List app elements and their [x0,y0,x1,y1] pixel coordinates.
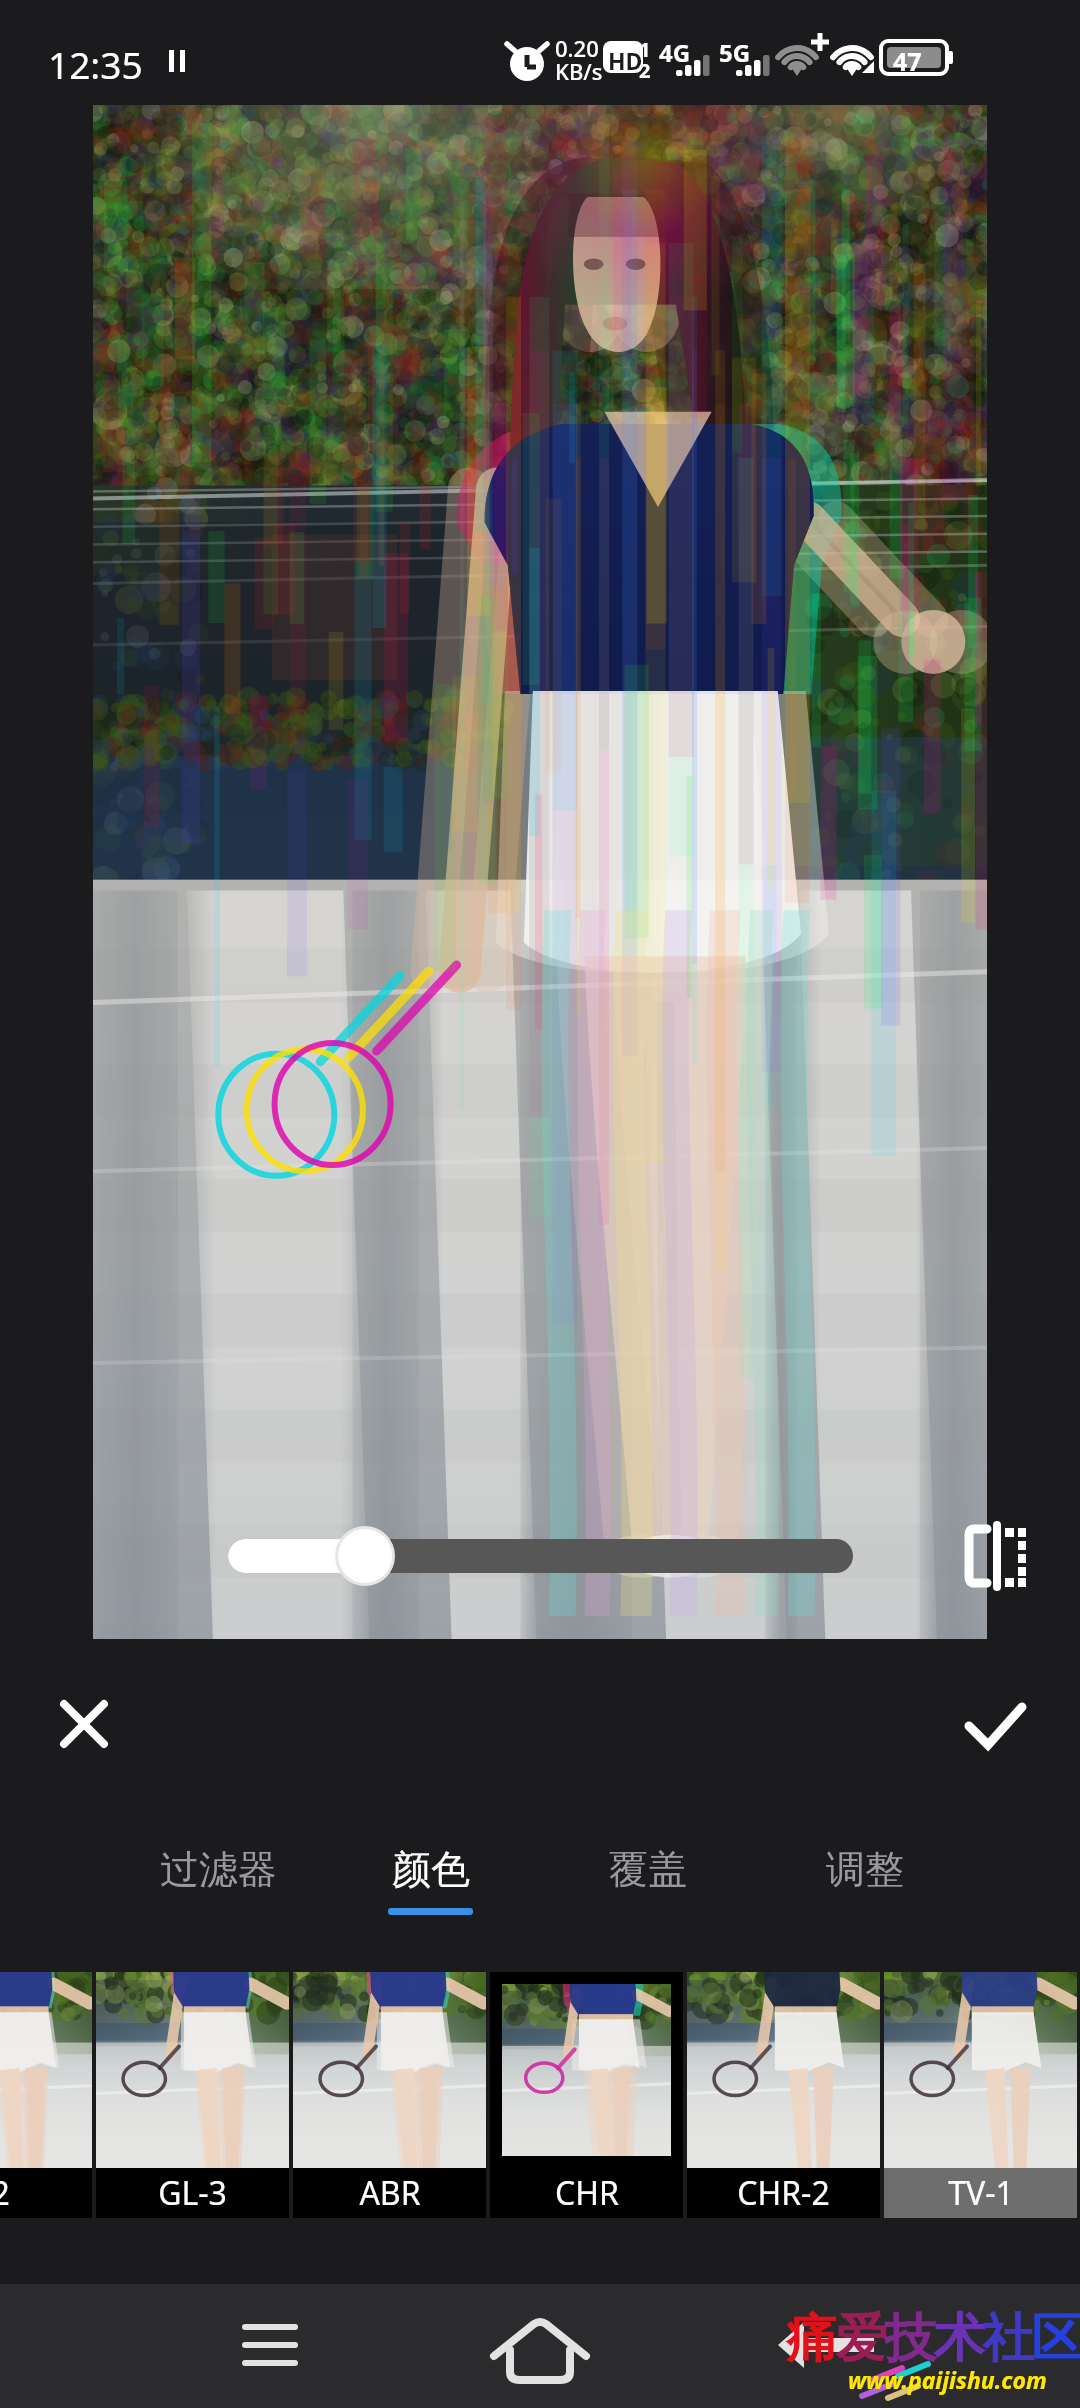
staticText: 过滤器 [160,1845,277,1894]
button[interactable]: CHR-2 [687,1972,880,2218]
button[interactable]: CHR [490,1972,683,2218]
staticText: 2 [639,57,651,84]
staticText: 0.20 [555,33,599,63]
staticText: 技 [884,2306,936,2372]
staticText: www.paijishu.com [848,2364,1047,2395]
staticText: TV-1 [948,2171,1014,2215]
staticText: CHR [555,2171,619,2215]
staticText: 社 [982,2306,1034,2372]
staticText: 调整 [826,1845,904,1894]
button[interactable]: Back [760,2284,900,2408]
button[interactable]: ABR [293,1972,486,2218]
staticText: 术 [933,2306,985,2372]
staticText: CHR-2 [737,2171,830,2215]
button[interactable]: 过滤器 [108,1845,328,1955]
staticText: 痛 [786,2306,838,2372]
staticText: GL-3 [158,2171,227,2215]
staticText: 47 [893,44,922,78]
staticText: HD [608,45,643,76]
staticText: 5G [719,36,751,69]
button[interactable]: 覆盖 [538,1845,758,1955]
button[interactable]: 调整 [755,1845,975,1955]
staticText: 区 [1031,2306,1080,2372]
staticText: 爱 [835,2306,887,2372]
button[interactable]: Menu [200,2284,340,2408]
staticText: -2 [0,2171,10,2215]
staticText: 颜色 [392,1845,470,1894]
button[interactable]: Apply [952,1680,1040,1768]
staticText: 1 [639,36,651,63]
staticText: KB/s [555,56,603,86]
button[interactable]: -2 [0,1972,92,2218]
staticText: 12:35 [48,39,143,89]
button[interactable]: Intensity slider [228,1539,853,1573]
button[interactable]: TV-1 [884,1972,1077,2218]
button[interactable]: GL-3 [96,1972,289,2218]
button[interactable]: Home [470,2284,610,2408]
button[interactable]: Cancel [40,1680,128,1768]
staticText: 覆盖 [609,1845,687,1894]
button[interactable]: Compare before and after [955,1505,1039,1589]
staticText: 4G [659,36,691,69]
button[interactable]: 颜色 [320,1845,540,1955]
staticText: ABR [359,2171,421,2215]
